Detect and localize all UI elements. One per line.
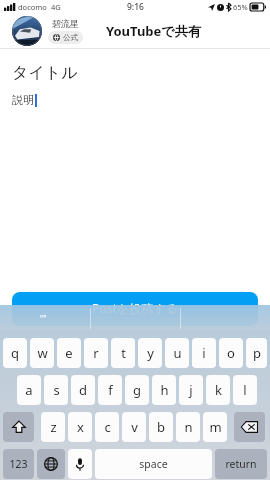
button[interactable]: 公式 xyxy=(48,31,83,44)
button[interactable]: space xyxy=(95,449,212,479)
staticText: m xyxy=(209,418,222,436)
staticText: t xyxy=(121,344,126,362)
button[interactable]: j xyxy=(179,375,203,405)
staticText: x xyxy=(77,418,84,436)
button[interactable]: y xyxy=(138,338,162,368)
staticText: s xyxy=(53,381,60,399)
button[interactable]: n xyxy=(176,412,200,442)
staticText: i xyxy=(202,344,206,362)
staticText: タイトル xyxy=(12,63,78,83)
staticText: e xyxy=(65,344,73,362)
button[interactable]: s xyxy=(44,375,68,405)
staticText: 説明 xyxy=(12,93,34,107)
staticText: o xyxy=(227,344,235,362)
button[interactable]: x xyxy=(68,412,92,442)
staticText: "" xyxy=(40,313,47,324)
button[interactable]: Backspace xyxy=(234,412,265,442)
button[interactable]: r xyxy=(84,338,108,368)
button[interactable]: v xyxy=(122,412,146,442)
button[interactable]: i xyxy=(192,338,216,368)
staticText: w xyxy=(37,344,48,362)
button[interactable]: Profile picture xyxy=(12,16,42,46)
button[interactable]: l xyxy=(233,375,257,405)
button[interactable]: m xyxy=(203,412,227,442)
staticText: 4G xyxy=(51,2,61,12)
staticText: return xyxy=(225,457,257,471)
staticText: 9:16 xyxy=(127,1,144,13)
staticText: YouTubeで共有 xyxy=(106,22,201,40)
staticText: k xyxy=(215,381,222,399)
button[interactable]: g xyxy=(125,375,149,405)
staticText: z xyxy=(50,418,57,436)
button[interactable]: w xyxy=(30,338,54,368)
button[interactable]: return xyxy=(215,449,267,479)
staticText: l xyxy=(243,381,247,399)
staticText: 公式 xyxy=(63,33,78,42)
staticText: c xyxy=(104,418,111,436)
button[interactable]: k xyxy=(206,375,230,405)
button[interactable]: d xyxy=(71,375,95,405)
staticText: g xyxy=(133,381,141,399)
button[interactable]: Change keyboard xyxy=(37,449,65,479)
staticText: u xyxy=(173,344,182,362)
other: Alarm xyxy=(217,4,224,11)
button[interactable]: e xyxy=(57,338,81,368)
staticText: 65% xyxy=(233,2,248,12)
staticText: y xyxy=(147,344,154,362)
staticText: docomo xyxy=(18,2,47,12)
staticText: v xyxy=(131,418,138,436)
staticText: 123 xyxy=(9,457,28,471)
button[interactable]: o xyxy=(219,338,243,368)
button[interactable]: 123 xyxy=(3,449,34,479)
staticText: p xyxy=(253,344,261,362)
button[interactable]: t xyxy=(111,338,135,368)
staticText: q xyxy=(11,344,19,362)
staticText: a xyxy=(25,381,33,399)
staticText: f xyxy=(108,381,113,399)
button[interactable]: p xyxy=(246,338,267,368)
staticText: Postを投稿する xyxy=(92,300,178,316)
button[interactable]: h xyxy=(152,375,176,405)
staticText: n xyxy=(184,418,193,436)
staticText: j xyxy=(189,381,193,399)
button[interactable]: c xyxy=(95,412,119,442)
staticText: d xyxy=(79,381,87,399)
other: Location xyxy=(208,4,215,11)
button[interactable]: b xyxy=(149,412,173,442)
button[interactable]: z xyxy=(41,412,65,442)
staticText: h xyxy=(160,381,169,399)
button[interactable]: a xyxy=(17,375,41,405)
button[interactable]: Postを投稿する xyxy=(12,292,258,326)
button[interactable]: f xyxy=(98,375,122,405)
other: Battery xyxy=(250,3,266,11)
staticText: r xyxy=(93,344,99,362)
button[interactable]: Shift xyxy=(3,412,34,442)
staticText: b xyxy=(157,418,165,436)
staticText: space xyxy=(139,457,168,471)
staticText: 碧流星 xyxy=(52,18,79,29)
other: Bluetooth xyxy=(226,3,231,11)
button[interactable]: Dictation xyxy=(68,449,92,479)
button[interactable]: u xyxy=(165,338,189,368)
button[interactable]: q xyxy=(3,338,27,368)
